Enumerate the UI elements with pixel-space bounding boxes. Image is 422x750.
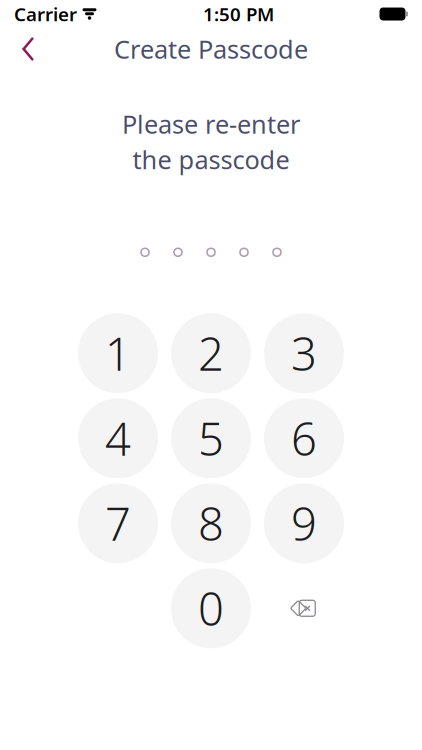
button[interactable]: 6	[264, 398, 344, 478]
button[interactable]: 4	[78, 398, 158, 478]
staticText: 8	[198, 493, 224, 553]
button[interactable]: Back	[6, 27, 50, 71]
button[interactable]: Delete	[264, 568, 344, 648]
staticText: 1:50 PM	[203, 2, 274, 26]
staticText: 9	[291, 493, 317, 553]
button[interactable]: 2	[171, 313, 251, 393]
staticText: Create Passcode	[114, 32, 308, 66]
button[interactable]: 7	[78, 483, 158, 563]
staticText: 0	[198, 578, 224, 638]
button[interactable]: 5	[171, 398, 251, 478]
staticText: 4	[105, 408, 131, 468]
button[interactable]: 3	[264, 313, 344, 393]
button[interactable]: 1	[78, 313, 158, 393]
staticText: 2	[198, 323, 224, 383]
staticText: 5	[198, 408, 224, 468]
staticText: 1	[105, 323, 131, 383]
button[interactable]: 8	[171, 483, 251, 563]
staticText: 3	[291, 323, 317, 383]
button[interactable]: 0	[171, 568, 251, 648]
staticText: 6	[291, 408, 317, 468]
button[interactable]: 9	[264, 483, 344, 563]
staticText: Carrier	[14, 2, 77, 26]
staticText: the passcode	[132, 143, 289, 176]
staticText: Please re-enter	[122, 107, 300, 141]
staticText: 7	[105, 493, 131, 553]
